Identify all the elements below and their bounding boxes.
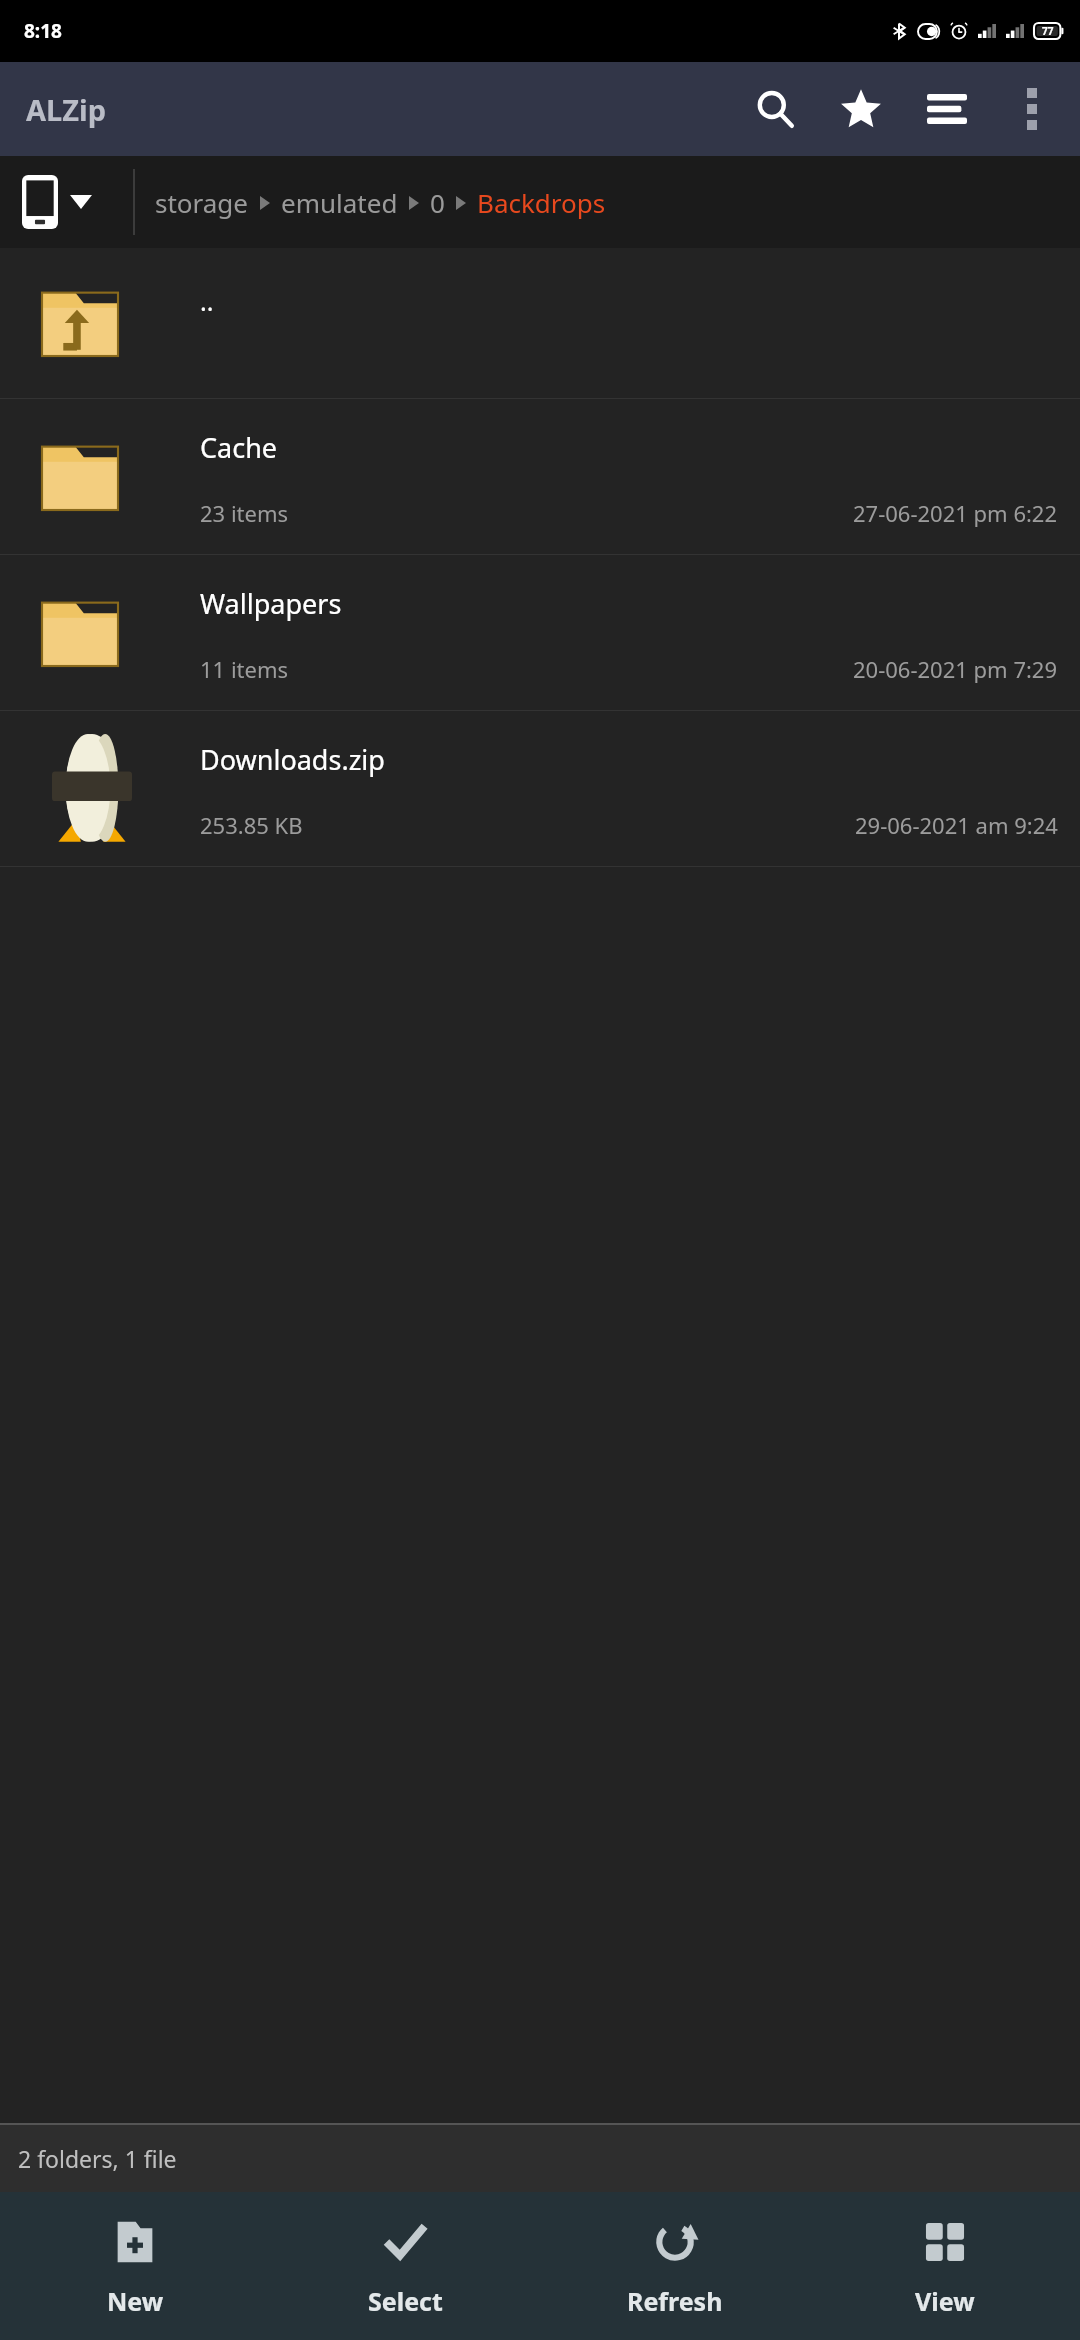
staticText: 8:18 <box>24 18 62 44</box>
staticText: Backdrops <box>477 185 606 220</box>
staticText: View <box>915 2284 975 2318</box>
button[interactable]: More options <box>990 67 1074 151</box>
button[interactable]: Backdrops <box>477 185 606 220</box>
button[interactable]: Wallpapers <box>0 555 1080 710</box>
staticText: 29-06-2021 am 9:24 <box>855 810 1058 840</box>
button[interactable]: 0 <box>430 185 445 220</box>
staticText: 20-06-2021 pm 7:29 <box>853 654 1058 684</box>
button[interactable]: Select storage <box>0 156 133 248</box>
staticText: Wallpapers <box>200 585 342 622</box>
staticText: 27-06-2021 pm 6:22 <box>853 498 1058 528</box>
button[interactable]: Favorites <box>818 66 904 152</box>
button[interactable]: Cache <box>0 399 1080 554</box>
button[interactable]: .. <box>0 248 1080 398</box>
button[interactable]: storage <box>155 185 249 220</box>
button[interactable]: Downloads.zip <box>0 711 1080 866</box>
staticText: Cache <box>200 429 278 466</box>
staticText: 77 <box>1042 24 1054 38</box>
button[interactable]: View <box>810 2192 1080 2340</box>
staticText: Select <box>368 2284 443 2318</box>
staticText: 23 items <box>200 498 289 528</box>
staticText: 11 items <box>200 654 289 684</box>
staticText: Downloads.zip <box>200 741 385 778</box>
button[interactable]: Refresh <box>540 2192 810 2340</box>
staticText: ALZip <box>26 90 107 129</box>
staticText: storage <box>155 185 249 220</box>
button[interactable]: New <box>0 2192 270 2340</box>
button[interactable]: Search <box>732 66 818 152</box>
staticText: emulated <box>281 185 398 220</box>
button[interactable]: Menu <box>904 66 990 152</box>
button[interactable]: emulated <box>281 185 398 220</box>
staticText: Refresh <box>627 2284 723 2318</box>
staticText: New <box>107 2284 164 2318</box>
staticText: .. <box>200 284 214 318</box>
staticText: 0 <box>430 185 445 220</box>
staticText: 253.85 KB <box>200 810 303 840</box>
staticText: 2 folders, 1 file <box>18 2143 177 2174</box>
button[interactable]: Select <box>270 2192 540 2340</box>
